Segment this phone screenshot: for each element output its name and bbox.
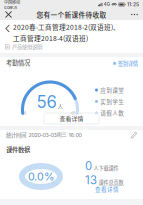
staticText: 应到课堂 — [100, 86, 124, 94]
staticText: 65 — [71, 110, 75, 115]
staticText: 统计时间 — [6, 131, 26, 139]
staticText: 0 — [24, 110, 27, 115]
staticText: 产品使用说明 — [12, 43, 42, 51]
staticText: 签到详情 — [118, 59, 138, 67]
button[interactable]: 签到详情 — [113, 58, 138, 68]
staticText: 2020-03-03周三 16:00 — [28, 131, 81, 138]
staticText: 实到学生 — [100, 97, 124, 105]
button[interactable]: 查看详情 — [44, 113, 99, 124]
staticText: 中国移动 — [4, 0, 20, 5]
staticText: 56 — [37, 92, 57, 112]
staticText: 课件总页数 — [99, 179, 124, 186]
staticText: 课件数据 — [6, 145, 30, 154]
staticText: 您有一个新课件待收取 — [36, 10, 106, 19]
staticText: 请假人数 — [100, 109, 124, 117]
staticText: 查看详情 — [59, 114, 83, 123]
staticText: 人 — [57, 103, 63, 111]
staticText: 人下载课件 — [94, 164, 119, 172]
staticText: 0 — [85, 159, 92, 173]
staticText: 4G — [104, 2, 110, 7]
staticText: 2020春-工商管理2018-2(双语班)、 — [13, 22, 120, 32]
staticText: 0.0% — [28, 170, 54, 183]
button[interactable]: More — [126, 9, 143, 20]
button[interactable]: 查看详情 — [95, 184, 119, 194]
button[interactable]: Close — [0, 9, 17, 20]
staticText: 0.08K/s — [4, 5, 17, 10]
staticText: 考勤情况 — [6, 58, 30, 67]
staticText: 工商管理2018-4(双语班) — [13, 33, 88, 43]
button[interactable]: Back — [3, 23, 12, 34]
staticText: 查看详情 — [95, 185, 119, 193]
staticText: 13 — [85, 173, 97, 187]
staticText: 11:25 — [127, 1, 139, 7]
button[interactable]: Edit — [128, 130, 140, 140]
